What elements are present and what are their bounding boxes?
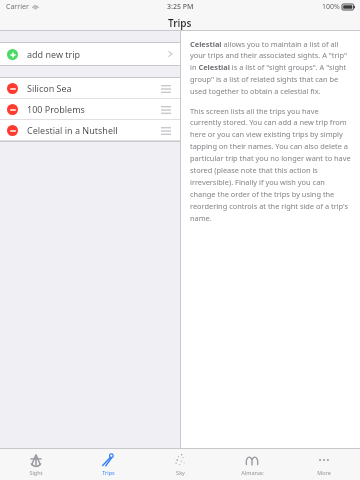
staticText: 100 Problems bbox=[27, 103, 85, 115]
staticText: This screen lists all the trips you have… bbox=[190, 106, 351, 223]
staticText: Sky bbox=[176, 469, 185, 476]
button[interactable]: Sky bbox=[144, 449, 216, 480]
button[interactable]: Delete bbox=[7, 83, 18, 94]
staticText: More bbox=[317, 469, 331, 476]
staticText: add new trip bbox=[27, 48, 81, 60]
button[interactable]: Delete bbox=[0, 120, 180, 140]
staticText: Almanac bbox=[241, 469, 264, 476]
button[interactable]: Reorder Celestial in a Nutshell bbox=[159, 122, 173, 138]
staticText: Trips bbox=[102, 469, 115, 476]
button[interactable]: Reorder Silicon Sea bbox=[159, 80, 173, 96]
button[interactable]: Trips bbox=[72, 449, 144, 480]
button[interactable]: Almanac bbox=[216, 449, 288, 480]
staticText: Trips bbox=[168, 16, 192, 30]
staticText: Celestial allows you to maintain a list … bbox=[190, 39, 351, 96]
button[interactable]: Delete bbox=[0, 99, 180, 119]
staticText: Carrier bbox=[6, 2, 29, 12]
staticText: Sight bbox=[29, 469, 43, 476]
button[interactable]: Delete bbox=[0, 78, 180, 98]
button[interactable]: Sight bbox=[0, 449, 72, 480]
staticText: Celestial in a Nutshell bbox=[27, 124, 118, 136]
button[interactable]: Delete bbox=[7, 125, 18, 136]
staticText: 100% bbox=[322, 2, 340, 12]
staticText: 3:25 PM bbox=[167, 2, 194, 12]
button[interactable]: Delete bbox=[7, 104, 18, 115]
staticText: Silicon Sea bbox=[27, 82, 72, 94]
button[interactable]: More bbox=[288, 449, 360, 480]
button[interactable]: Reorder 100 Problems bbox=[159, 101, 173, 117]
button[interactable]: add new trip bbox=[0, 43, 180, 65]
